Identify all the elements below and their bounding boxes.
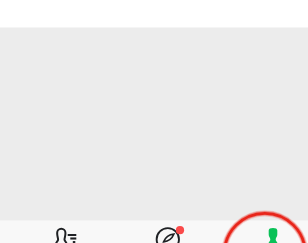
button[interactable]: Explore (118, 220, 221, 243)
button[interactable]: Contacts (16, 220, 118, 243)
button[interactable]: Profile (221, 220, 308, 243)
